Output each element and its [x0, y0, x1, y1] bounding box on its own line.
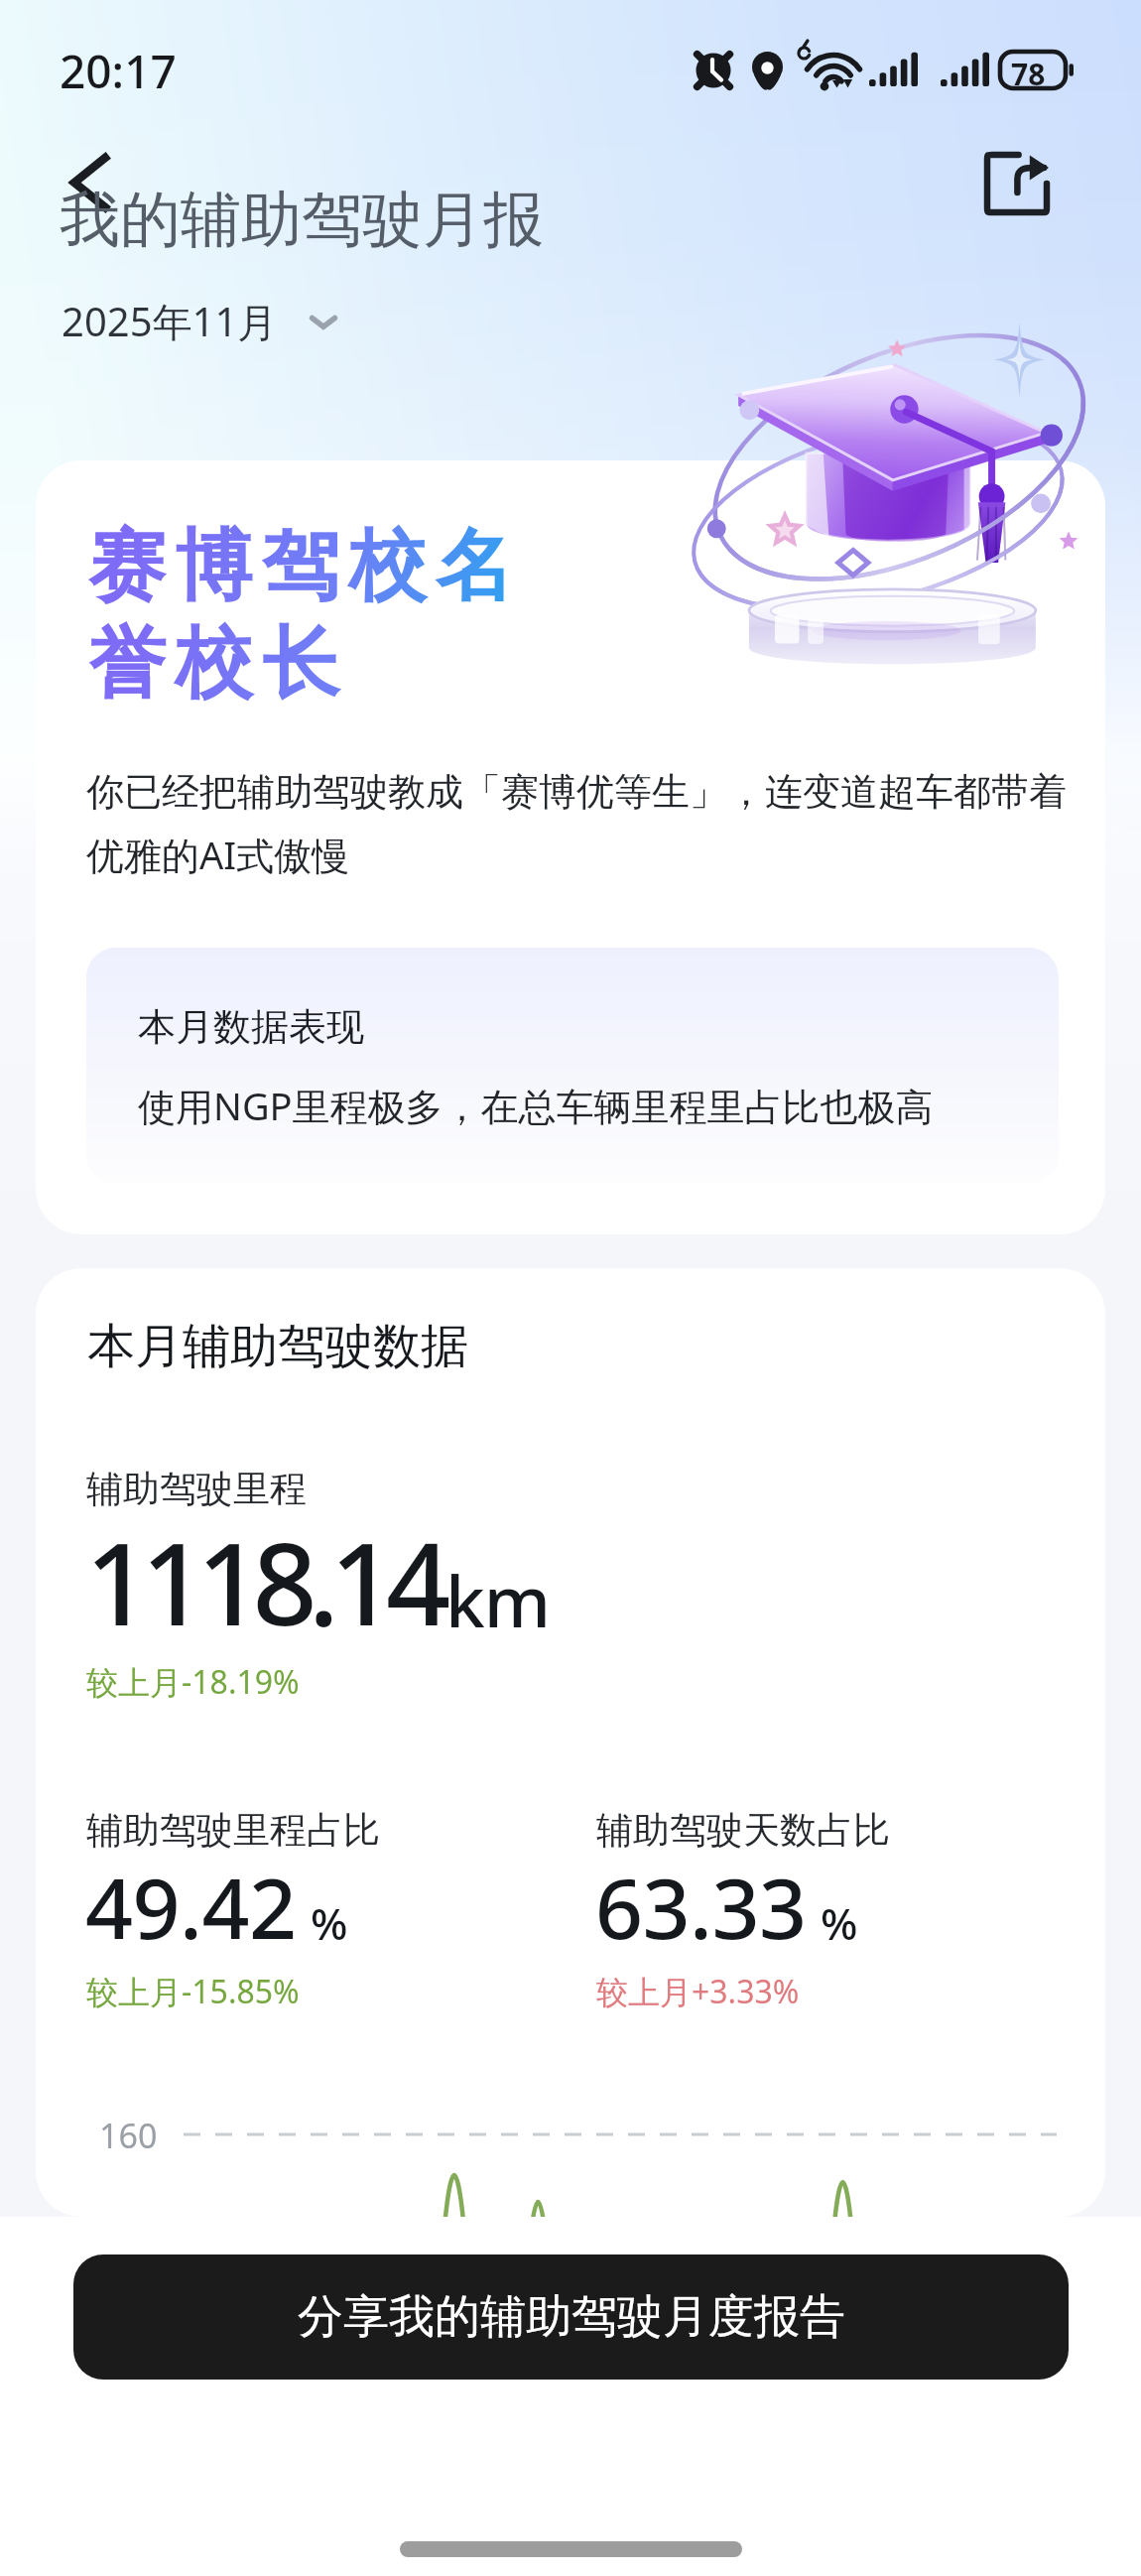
- staticText: 你已经把辅助驾驶教成「赛博优等生」，连变道超车都带着优雅的AI式傲慢: [86, 768, 1078, 881]
- staticText: 本月数据表现: [138, 1003, 364, 1051]
- staticText: 辅助驾驶里程: [86, 1466, 307, 1512]
- staticText: 本月辅助驾驶数据: [87, 1317, 468, 1376]
- button[interactable]: 分享我的辅助驾驶月度报告: [73, 2254, 1069, 2380]
- staticText: 78: [1011, 54, 1046, 94]
- staticText: 较上月-18.19%: [86, 1660, 300, 1704]
- button[interactable]: 2025年11月: [62, 294, 345, 348]
- staticText: 较上月-15.85%: [86, 1970, 300, 2013]
- staticText: 1118.14: [85, 1504, 443, 1658]
- staticText: 我的辅助驾驶月报: [60, 182, 544, 258]
- staticText: 誉校长: [88, 615, 349, 712]
- staticText: 49.42: [85, 1850, 297, 1963]
- staticText: %: [311, 1893, 348, 1953]
- staticText: %: [821, 1893, 858, 1953]
- staticText: 2025年11月: [62, 294, 278, 348]
- button[interactable]: Back: [58, 149, 119, 218]
- staticText: 辅助驾驶天数占比: [596, 1807, 890, 1854]
- staticText: 20:17: [60, 40, 177, 102]
- staticText: 辅助驾驶里程占比: [86, 1807, 380, 1854]
- button[interactable]: Share: [977, 145, 1057, 222]
- staticText: 分享我的辅助驾驶月度报告: [298, 2288, 845, 2346]
- staticText: km: [445, 1552, 550, 1648]
- staticText: 63.33: [595, 1850, 807, 1963]
- staticText: 使用NGP里程极多，在总车辆里程里占比也极高: [138, 1080, 934, 1131]
- staticText: 较上月+3.33%: [596, 1970, 800, 2013]
- staticText: 160: [99, 2113, 158, 2158]
- staticText: 赛博驾校名: [88, 518, 523, 615]
